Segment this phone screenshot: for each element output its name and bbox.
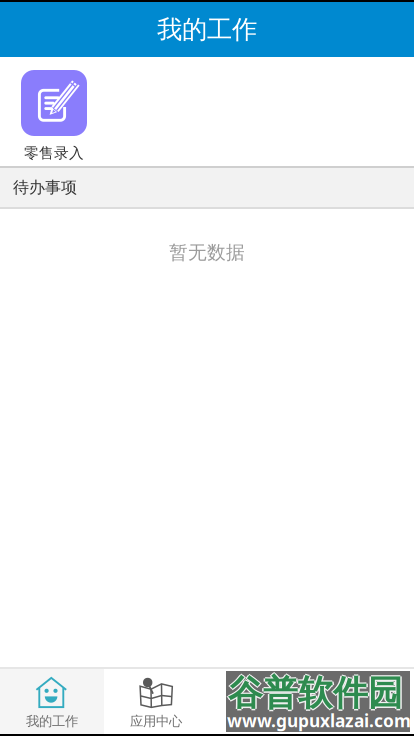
staticText: 应用中心 xyxy=(130,713,182,729)
staticText: 谷普软件园 xyxy=(228,671,403,713)
staticText: 我的工作 xyxy=(157,14,257,45)
staticText: 零售录入 xyxy=(24,144,84,162)
button[interactable]: 应用中心 xyxy=(104,669,208,734)
staticText: 待办事项 xyxy=(13,178,77,197)
staticText: www.gupuxlazai.com xyxy=(227,709,411,732)
button[interactable]: 零售录入 xyxy=(0,57,108,166)
staticText: 暂无数据 xyxy=(169,241,245,264)
staticText: 我的工作 xyxy=(26,713,78,729)
staticText: 谷普软件园 xyxy=(228,672,403,715)
staticText: 谷普软件园 xyxy=(229,672,404,715)
staticText: 谷普软件园 xyxy=(227,672,402,715)
button[interactable]: 我的工作 xyxy=(0,669,104,734)
staticText: 谷普软件园 xyxy=(228,673,403,716)
